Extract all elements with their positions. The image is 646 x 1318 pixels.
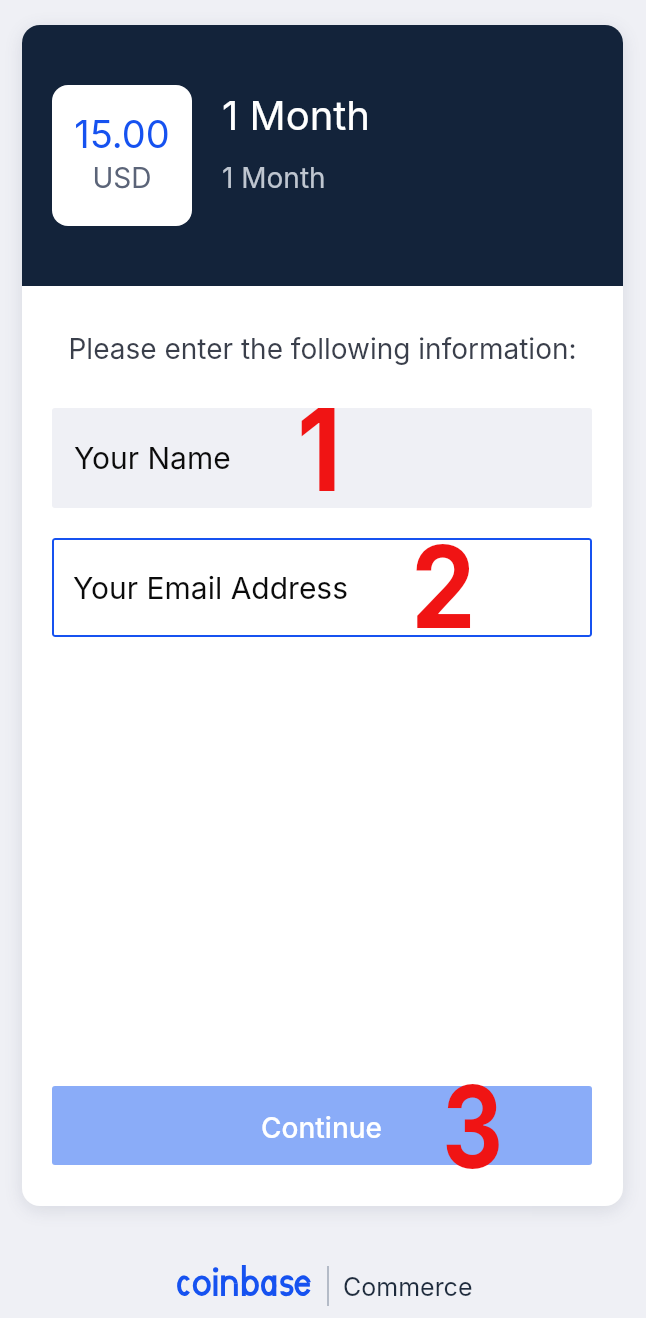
staticText: Your Email Address bbox=[73, 570, 349, 606]
button[interactable]: Continue bbox=[52, 1086, 592, 1165]
other: Coinbase Commerce bbox=[175, 1260, 317, 1302]
staticText: 1 bbox=[297, 381, 342, 519]
staticText: Please enter the following information: bbox=[22, 332, 623, 366]
staticText: Continue bbox=[261, 1111, 383, 1145]
staticText: Commerce bbox=[343, 1272, 473, 1302]
staticText: USD bbox=[52, 161, 192, 195]
staticText: 2 bbox=[411, 518, 476, 656]
staticText: 1 Month bbox=[222, 91, 371, 139]
button[interactable]: Your Email Address bbox=[52, 538, 592, 637]
button[interactable]: Your Name bbox=[52, 408, 592, 508]
staticText: 3 bbox=[442, 1058, 503, 1196]
staticText: 15.00 bbox=[52, 111, 192, 157]
staticText: Your Name bbox=[74, 440, 231, 476]
staticText: 1 Month bbox=[222, 161, 326, 195]
